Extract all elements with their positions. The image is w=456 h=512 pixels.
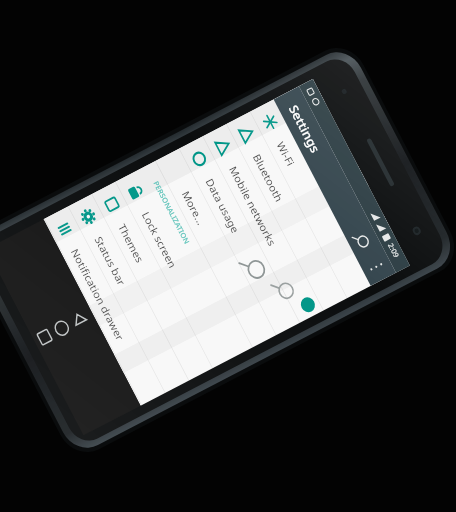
button[interactable]: Settings screen on phone <box>0 0 456 512</box>
